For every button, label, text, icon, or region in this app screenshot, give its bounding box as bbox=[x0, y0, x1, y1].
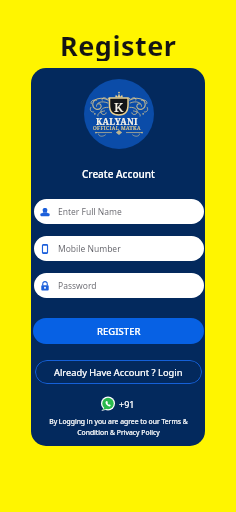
button[interactable]: Password bbox=[34, 273, 204, 298]
staticText: Register bbox=[60, 27, 177, 61]
button[interactable]: WhatsApp bbox=[101, 397, 115, 411]
staticText: By Logging in you are agree to our Terms… bbox=[49, 417, 188, 437]
staticText: OFFICIAL MATKA bbox=[93, 125, 141, 132]
staticText: K bbox=[114, 98, 124, 116]
staticText: Already Have Account ? Login bbox=[54, 366, 183, 379]
staticText: REGISTER bbox=[97, 325, 141, 338]
staticText: Create Account bbox=[82, 167, 155, 181]
button[interactable]: Already Have Account ? Login bbox=[35, 360, 202, 384]
staticText: Enter Full Name bbox=[58, 206, 122, 218]
staticText: Password bbox=[58, 280, 97, 292]
staticText: Mobile Number bbox=[58, 243, 121, 255]
button[interactable]: Mobile Number bbox=[34, 236, 204, 261]
staticText: KALYANI bbox=[96, 116, 138, 128]
button[interactable]: Enter Full Name bbox=[34, 199, 204, 224]
button[interactable]: REGISTER bbox=[33, 318, 204, 344]
staticText: +91 bbox=[119, 398, 135, 410]
